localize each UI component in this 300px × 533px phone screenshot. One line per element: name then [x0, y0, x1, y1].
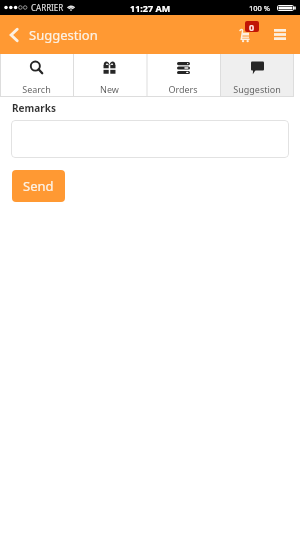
staticText: New [100, 83, 119, 95]
button[interactable]: Menu [266, 15, 293, 54]
staticText: CARRIER [31, 2, 64, 13]
staticText: Suggestion [29, 26, 98, 44]
button[interactable]: Orders [146, 54, 220, 96]
button[interactable]: Suggestion [220, 54, 294, 96]
staticText: Remarks [12, 101, 56, 115]
staticText: 11:27 AM [130, 2, 171, 14]
staticText: Suggestion [233, 83, 281, 95]
button[interactable]: New [73, 54, 146, 96]
button[interactable]: Search [0, 54, 73, 96]
staticText: 0 [249, 21, 255, 32]
staticText: Search [22, 83, 51, 95]
button[interactable]: Suggestion [0, 21, 106, 49]
button[interactable]: Send [12, 170, 65, 202]
staticText: 100 % [249, 3, 271, 13]
button[interactable] [11, 120, 289, 158]
staticText: Send [23, 177, 54, 195]
button[interactable]: Cart [224, 15, 266, 54]
staticText: Orders [168, 83, 198, 95]
